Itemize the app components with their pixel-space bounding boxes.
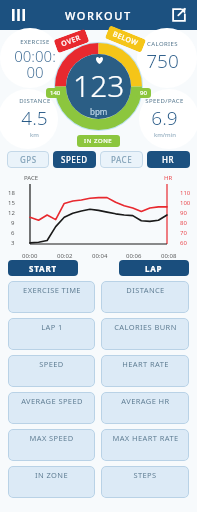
staticText: HR [164,174,173,182]
staticText: 00:00: 00 [14,46,56,82]
button[interactable]: DISTANCE [101,281,189,313]
button[interactable]: AVERAGE SPEED [8,392,95,424]
staticText: 00:02 [57,252,73,260]
button[interactable]: SPEED [53,151,96,168]
staticText: LAP 1 [41,322,63,332]
staticText: IN ZONE [84,137,113,145]
staticText: 6.9 [151,105,178,131]
staticText: CALORIES [147,40,178,48]
button[interactable]: Menu [6,3,30,27]
staticText: 750 [146,48,179,74]
button[interactable]: LAP [119,260,189,276]
staticText: 110 [180,189,191,197]
staticText: 4.5 [21,105,48,131]
staticText: DISTANCE [126,285,165,295]
button[interactable]: MAX HEART RATE [101,429,189,461]
button[interactable]: MAX SPEED [8,429,95,461]
staticText: DISTANCE [19,97,51,105]
staticText: AVERAGE SPEED [21,396,83,406]
staticText: STEPS [133,470,157,480]
staticText: HEART RATE [122,359,169,369]
staticText: PACE [24,174,39,182]
button[interactable]: GPS [7,151,49,168]
staticText: 6 [11,229,15,237]
staticText: 70 [180,229,187,237]
staticText: MAX HEART RATE [112,433,179,443]
staticText: WORKOUT [65,8,132,23]
staticText: CALORIES BURN [114,322,177,332]
button[interactable]: START [8,260,78,276]
staticText: SPEED [61,154,88,165]
staticText: EXERCISE [20,38,50,46]
button[interactable]: CALORIES BURN [101,318,189,350]
staticText: 9 [11,219,15,227]
staticText: 90 [140,89,147,97]
staticText: OVER [60,33,83,49]
staticText: 90 [180,209,187,217]
button[interactable]: LAP 1 [8,318,95,350]
button[interactable]: PACE [100,151,143,168]
staticText: 80 [180,219,187,227]
staticText: GPS [20,154,37,165]
button[interactable]: SPEED [8,355,95,387]
staticText: BELOW [111,29,140,49]
staticText: 123 [73,65,125,106]
staticText: SPEED/PACE [145,97,184,105]
staticText: 00:08 [161,252,177,260]
staticText: START [29,263,57,274]
staticText: EXERCISE TIME [23,285,81,295]
staticText: HR [162,154,175,165]
staticText: 12 [8,209,15,217]
staticText: km/min [154,131,176,139]
staticText: AVERAGE HR [121,396,170,406]
staticText: km [30,131,39,139]
button[interactable]: HEART RATE [101,355,189,387]
staticText: bpm [90,106,108,117]
staticText: 00:04 [92,252,108,260]
staticText: IN ZONE [35,470,68,480]
staticText: 140 [50,89,61,97]
staticText: 60 [180,239,187,247]
staticText: 18 [8,189,15,197]
button[interactable]: Share [167,3,191,27]
staticText: 00:06 [126,252,142,260]
staticText: MAX SPEED [29,433,74,443]
staticText: LAP [145,263,163,274]
button[interactable]: IN ZONE [8,466,95,498]
button[interactable]: AVERAGE HR [101,392,189,424]
staticText: PACE [111,154,133,165]
staticText: 3 [11,239,15,247]
staticText: 00:00 [22,252,38,260]
button[interactable]: EXERCISE TIME [8,281,95,313]
button[interactable]: HR [147,151,190,168]
staticText: 100 [180,199,191,207]
staticText: SPEED [39,359,64,369]
button[interactable]: STEPS [101,466,189,498]
staticText: 15 [8,199,15,207]
